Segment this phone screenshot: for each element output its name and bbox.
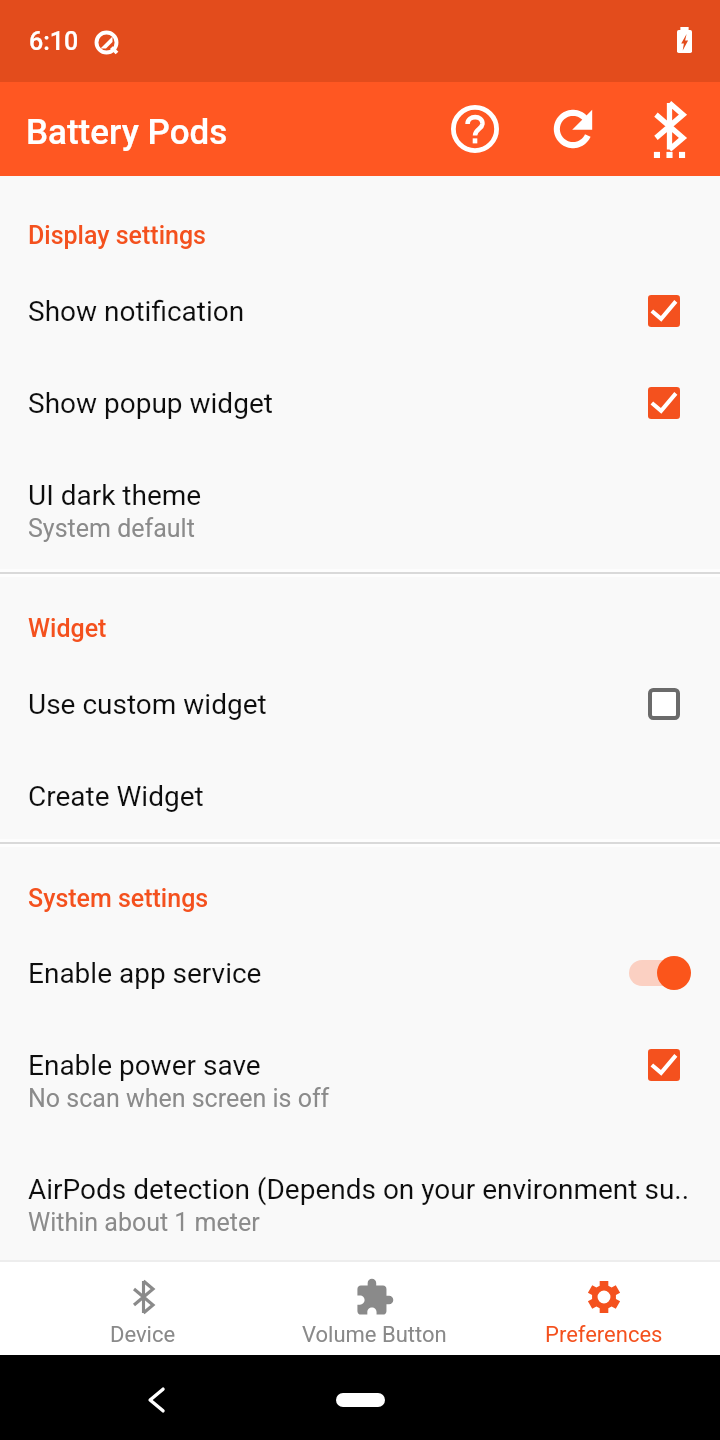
button[interactable]: Enabled <box>634 281 694 341</box>
button[interactable]: Disabled <box>634 674 694 734</box>
staticText: Enable power save <box>28 1049 688 1082</box>
staticText: 6:10 <box>29 27 79 56</box>
button[interactable]: Refresh <box>526 82 620 176</box>
staticText: System default <box>28 514 195 543</box>
button[interactable]: Help <box>428 82 522 176</box>
button[interactable]: UI dark theme <box>0 455 720 553</box>
staticText: Within about 1 meter <box>28 1208 260 1237</box>
button[interactable]: Create Widget <box>0 756 720 848</box>
button[interactable]: Home <box>300 1373 420 1423</box>
button[interactable]: Use custom widget <box>0 664 720 756</box>
button[interactable]: Enable app service, on <box>629 955 687 991</box>
staticText: Display settings <box>28 221 206 250</box>
staticText: System settings <box>28 884 209 913</box>
button[interactable]: Enable app service <box>0 933 720 1025</box>
staticText: Show popup widget <box>28 387 688 420</box>
staticText: UI dark theme <box>28 479 688 512</box>
button[interactable]: Device <box>28 1262 258 1355</box>
staticText: Widget <box>28 614 107 643</box>
staticText: No scan when screen is off <box>28 1084 330 1113</box>
button[interactable]: AirPods detection (Depends on your envir… <box>0 1149 720 1247</box>
staticText: Volume Button <box>302 1322 447 1348</box>
staticText: Preferences <box>545 1322 663 1348</box>
staticText: AirPods detection (Depends on your envir… <box>28 1173 688 1206</box>
button[interactable]: Back <box>120 1363 190 1433</box>
button[interactable]: Enable power save <box>0 1025 720 1123</box>
button[interactable]: Enabled <box>634 1035 694 1095</box>
staticText: Battery Pods <box>26 112 228 153</box>
staticText: Enable app service <box>28 957 688 990</box>
button[interactable]: Enabled <box>634 373 694 433</box>
staticText: Create Widget <box>28 780 688 813</box>
button[interactable]: Show popup widget <box>0 363 720 455</box>
staticText: Use custom widget <box>28 688 688 721</box>
button[interactable]: Volume Button <box>259 1262 489 1355</box>
button[interactable]: Show notification <box>0 271 720 363</box>
button[interactable]: Preferences <box>489 1262 719 1355</box>
staticText: Show notification <box>28 295 688 328</box>
staticText: Device <box>110 1322 176 1348</box>
button[interactable]: Bluetooth scanning <box>622 82 716 176</box>
